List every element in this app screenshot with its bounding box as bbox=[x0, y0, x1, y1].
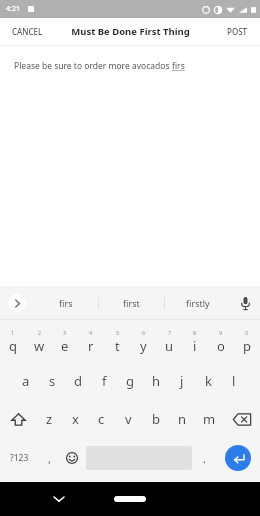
button[interactable]: Home bbox=[114, 496, 146, 502]
staticText: s bbox=[49, 372, 56, 390]
staticText: 6 bbox=[142, 329, 146, 336]
staticText: . bbox=[203, 451, 206, 466]
button[interactable]: firs bbox=[34, 286, 98, 320]
button[interactable]: f bbox=[91, 362, 117, 400]
button[interactable]: firstly bbox=[165, 286, 230, 320]
staticText: l bbox=[232, 372, 236, 390]
staticText: 7 bbox=[168, 329, 172, 336]
button[interactable]: Voice input bbox=[230, 286, 260, 320]
staticText: u bbox=[165, 337, 174, 355]
button[interactable]: 5 bbox=[104, 322, 130, 362]
button[interactable]: CANCEL bbox=[0, 20, 55, 43]
button[interactable]: More suggestions bbox=[8, 294, 26, 312]
staticText: first bbox=[123, 297, 140, 309]
button[interactable]: a bbox=[13, 362, 39, 400]
staticText: Please be sure to order more avocados bbox=[14, 60, 172, 72]
staticText: q bbox=[9, 337, 17, 355]
button[interactable]: Emoji bbox=[60, 438, 84, 478]
button[interactable]: Hide keyboard bbox=[48, 488, 70, 510]
button[interactable]: first bbox=[99, 286, 164, 320]
staticText: firstly bbox=[186, 297, 210, 309]
staticText: 3 bbox=[63, 329, 67, 336]
staticText: j bbox=[180, 372, 184, 390]
staticText: firs bbox=[172, 60, 185, 72]
staticText: g bbox=[126, 372, 134, 390]
staticText: p bbox=[243, 337, 251, 355]
staticText: o bbox=[217, 337, 225, 355]
button[interactable]: 2 bbox=[26, 322, 52, 362]
staticText: t bbox=[115, 337, 120, 355]
button[interactable]: n bbox=[169, 400, 196, 438]
staticText: i bbox=[193, 337, 197, 355]
staticText: 4 bbox=[89, 329, 93, 336]
button[interactable]: j bbox=[169, 362, 195, 400]
staticText: h bbox=[152, 372, 161, 390]
button[interactable]: 3 bbox=[52, 322, 78, 362]
button[interactable]: v bbox=[115, 400, 142, 438]
button[interactable]: k bbox=[195, 362, 221, 400]
staticText: 4:21 bbox=[6, 4, 20, 14]
staticText: 0 bbox=[245, 329, 249, 336]
staticText: r bbox=[88, 337, 94, 355]
button[interactable]: 1 bbox=[0, 322, 26, 362]
staticText: 8 bbox=[193, 329, 197, 336]
button[interactable]: POST bbox=[215, 20, 260, 43]
button[interactable]: x bbox=[62, 400, 88, 438]
staticText: m bbox=[203, 410, 216, 428]
staticText: ?123 bbox=[10, 452, 29, 464]
button[interactable]: h bbox=[143, 362, 169, 400]
button[interactable]: , bbox=[39, 438, 60, 478]
staticText: Must Be Done First Thing bbox=[71, 25, 190, 38]
staticText: x bbox=[72, 410, 79, 428]
staticText: n bbox=[178, 410, 187, 428]
button[interactable]: 0 bbox=[234, 322, 260, 362]
staticText: a bbox=[22, 372, 30, 390]
button[interactable]: . bbox=[194, 438, 215, 478]
staticText: w bbox=[34, 337, 45, 355]
button[interactable]: z bbox=[36, 400, 62, 438]
button[interactable]: 4 bbox=[78, 322, 104, 362]
staticText: 1 bbox=[11, 329, 15, 336]
button[interactable]: g bbox=[117, 362, 143, 400]
button[interactable]: 6 bbox=[130, 322, 156, 362]
staticText: firs bbox=[59, 297, 73, 309]
staticText: 2 bbox=[38, 329, 42, 336]
staticText: POST bbox=[227, 26, 248, 37]
button[interactable]: s bbox=[39, 362, 65, 400]
staticText: c bbox=[98, 410, 105, 428]
staticText: e bbox=[61, 337, 69, 355]
button[interactable]: Backspace bbox=[223, 400, 260, 438]
staticText: z bbox=[46, 410, 53, 428]
staticText: Please be sure to order more avocados bbox=[14, 60, 172, 72]
staticText: 5 bbox=[116, 329, 120, 336]
button[interactable]: Enter bbox=[225, 445, 251, 471]
staticText: y bbox=[140, 337, 147, 355]
staticText: f bbox=[102, 372, 107, 390]
staticText: d bbox=[74, 372, 82, 390]
button[interactable]: Shift bbox=[0, 400, 36, 438]
button[interactable]: l bbox=[221, 362, 247, 400]
staticText: b bbox=[152, 410, 160, 428]
staticText: , bbox=[48, 451, 51, 466]
button[interactable]: c bbox=[88, 400, 115, 438]
staticText: CANCEL bbox=[12, 26, 43, 37]
button[interactable]: d bbox=[65, 362, 91, 400]
button[interactable]: b bbox=[142, 400, 169, 438]
button[interactable]: ?123 bbox=[0, 438, 39, 478]
button[interactable]: 8 bbox=[182, 322, 208, 362]
staticText: k bbox=[205, 372, 212, 390]
staticText: v bbox=[125, 410, 132, 428]
button[interactable]: 7 bbox=[156, 322, 182, 362]
staticText: 9 bbox=[219, 329, 223, 336]
button[interactable]: 9 bbox=[208, 322, 234, 362]
button[interactable]: m bbox=[196, 400, 223, 438]
